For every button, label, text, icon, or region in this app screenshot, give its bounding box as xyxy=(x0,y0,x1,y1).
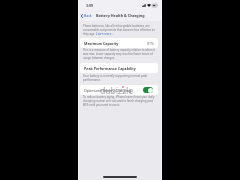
staticText: Peak Performance Capability xyxy=(84,66,136,71)
staticText: Your battery is currently supporting nor… xyxy=(83,74,155,82)
staticText: This is a measure of battery capacity re… xyxy=(83,48,155,60)
staticText: Battery Health & Charging xyxy=(96,13,145,18)
staticText: To reduce battery aging, iPhone learns f… xyxy=(83,95,155,107)
staticText: 3:09 xyxy=(86,3,93,8)
staticText: Maximum Capacity xyxy=(84,41,119,46)
staticText: dubizzle xyxy=(100,85,134,97)
button[interactable]: Maximum Capacity xyxy=(80,38,158,48)
button[interactable]: Peak Performance Capability xyxy=(80,63,158,73)
staticText: Optimized Battery Charging xyxy=(84,88,132,93)
button[interactable]: Optimized Battery Charging xyxy=(80,85,158,95)
staticText: they age. xyxy=(83,32,96,36)
staticText: Back xyxy=(84,13,92,18)
button[interactable]: Back xyxy=(78,11,95,20)
staticText: 87% xyxy=(147,41,154,46)
button[interactable]: Learn more... xyxy=(96,32,114,36)
staticText: Phone batteries, like all rechargeable b… xyxy=(83,24,155,32)
button[interactable]: Optimized Battery Charging, on xyxy=(143,87,153,93)
